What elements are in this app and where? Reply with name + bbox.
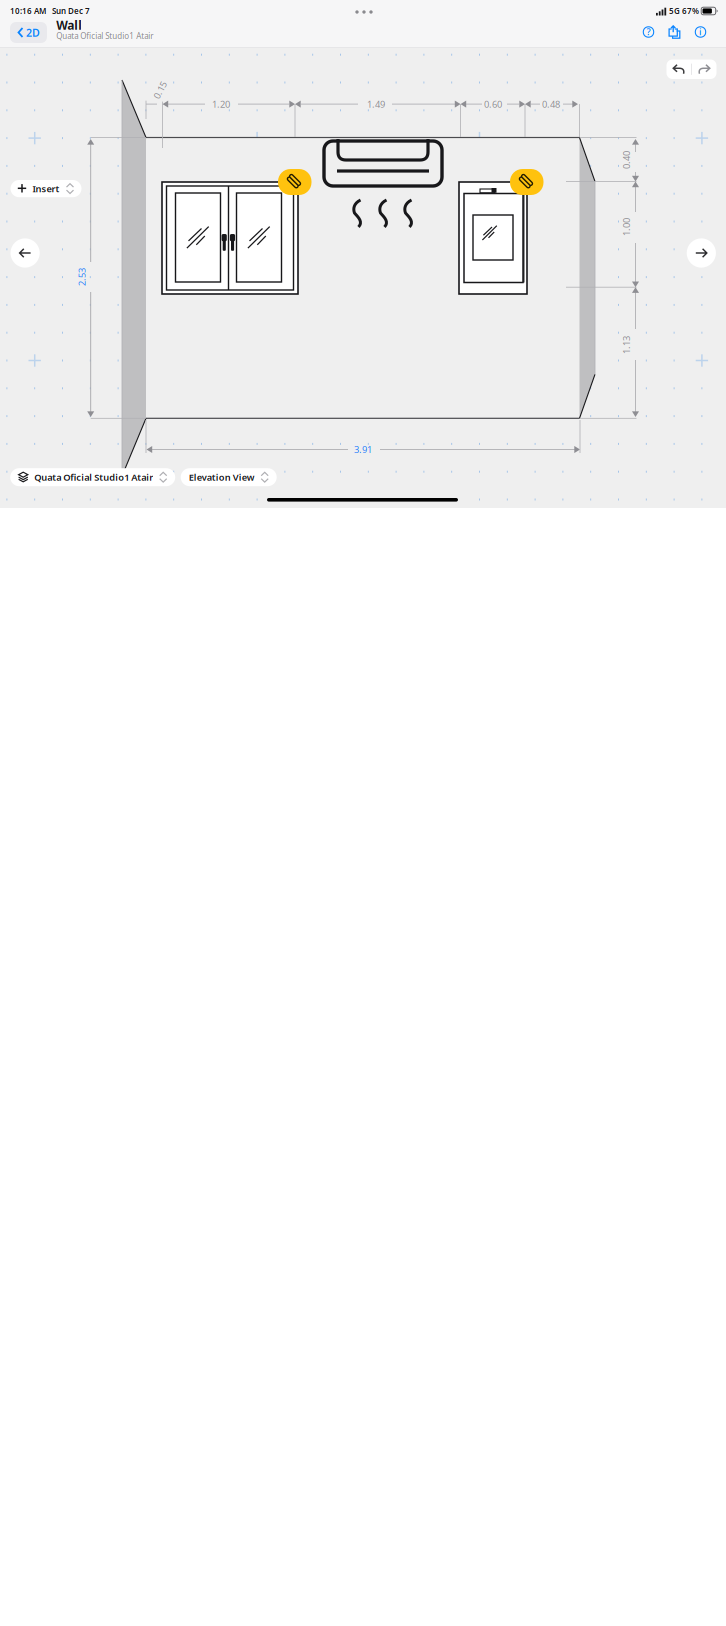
staticText: 1.13 [617, 339, 635, 351]
staticText: 0.60 [484, 98, 502, 110]
staticText: 1.00 [617, 221, 635, 233]
staticText: 0.40 [617, 154, 635, 166]
button[interactable]: Elevation View [181, 468, 277, 486]
button[interactable]: Attachment [510, 169, 543, 195]
staticText: Elevation View [189, 471, 255, 483]
staticText: i [699, 25, 702, 38]
staticText: 10:16 AM [10, 6, 46, 16]
button[interactable]: Attachment [278, 169, 311, 195]
staticText: Quata Oficial Studio1 Atair [56, 31, 153, 41]
button[interactable]: Previous [10, 238, 40, 268]
staticText: 0.15 [151, 84, 169, 96]
staticText: Insert [32, 182, 59, 195]
staticText: 1.49 [367, 98, 385, 110]
button[interactable]: Undo [666, 59, 691, 79]
staticText: ? [646, 25, 650, 38]
button[interactable]: Quata Oficial Studio1 Atair [10, 468, 175, 486]
staticText: 0.48 [542, 98, 560, 110]
button[interactable]: Help [635, 21, 661, 43]
staticText: 5G [667, 6, 680, 16]
button[interactable]: Share [661, 21, 687, 43]
staticText: 2D [26, 25, 40, 40]
button[interactable]: Redo [692, 59, 717, 79]
staticText: Sun Dec 7 [46, 6, 90, 16]
button[interactable]: Info [687, 21, 713, 43]
button[interactable]: Insert [10, 180, 81, 197]
staticText: 1.20 [212, 98, 230, 110]
staticText: 2.53 [73, 271, 91, 283]
staticText: 67% [680, 6, 699, 16]
button[interactable]: Next [687, 238, 716, 268]
staticText: Quata Oficial Studio1 Atair [34, 471, 153, 483]
staticText: 3.91 [354, 443, 372, 456]
button[interactable]: 2D [10, 22, 47, 43]
staticText: Wall [56, 17, 82, 33]
